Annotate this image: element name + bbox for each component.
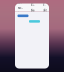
button[interactable]: Edit — [42, 2, 46, 13]
button[interactable]: Back — [17, 0, 22, 15]
staticText: Edit — [42, 2, 46, 13]
staticText: Title — [30, 2, 34, 13]
staticText: Back — [17, 0, 22, 15]
